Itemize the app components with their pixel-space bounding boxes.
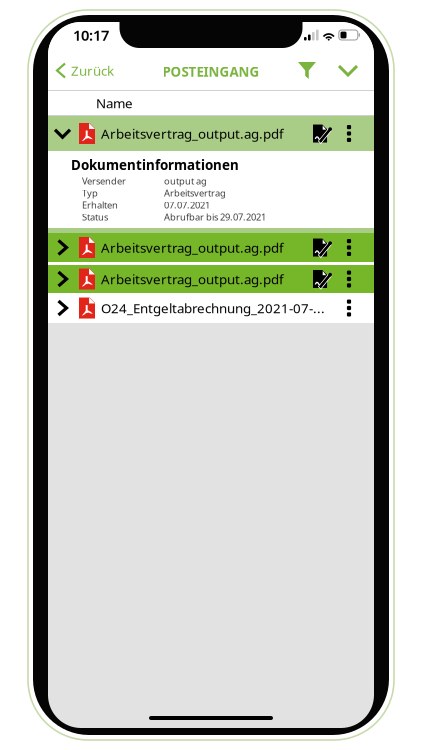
staticText: O24_Entgeltabrechnung_2021-07-...: [101, 299, 325, 317]
staticText: Zurück: [71, 62, 114, 79]
staticText: 10:17: [73, 25, 109, 45]
staticText: 07.07.2021: [164, 199, 210, 211]
staticText: POSTEINGANG: [162, 63, 259, 80]
staticText: Versender: [82, 175, 126, 187]
staticText: Arbeitsvertrag: [164, 187, 226, 199]
staticText: output ag: [164, 175, 207, 187]
button[interactable]: Arbeitsvertrag_output.ag.pdf: [48, 233, 374, 262]
button[interactable]: Filter: [285, 53, 329, 85]
button[interactable]: Mehr Optionen: [329, 53, 374, 85]
button[interactable]: Arbeitsvertrag_output.ag.pdf: [48, 116, 374, 151]
staticText: Arbeitsvertrag_output.ag.pdf: [101, 270, 284, 288]
staticText: Arbeitsvertrag_output.ag.pdf: [101, 239, 284, 256]
staticText: Abrufbar bis 29.07.2021: [164, 211, 266, 223]
staticText: Erhalten: [82, 199, 118, 211]
button[interactable]: Zurück: [48, 51, 114, 87]
staticText: Dokumentinformationen: [71, 156, 239, 174]
staticText: Name: [96, 94, 133, 112]
staticText: Status: [82, 211, 108, 223]
button[interactable]: Arbeitsvertrag_output.ag.pdf: [48, 265, 374, 293]
staticText: Arbeitsvertrag_output.ag.pdf: [101, 125, 284, 142]
button[interactable]: O24_Entgeltabrechnung_2021-07-...: [48, 293, 374, 323]
staticText: Typ: [82, 187, 98, 199]
